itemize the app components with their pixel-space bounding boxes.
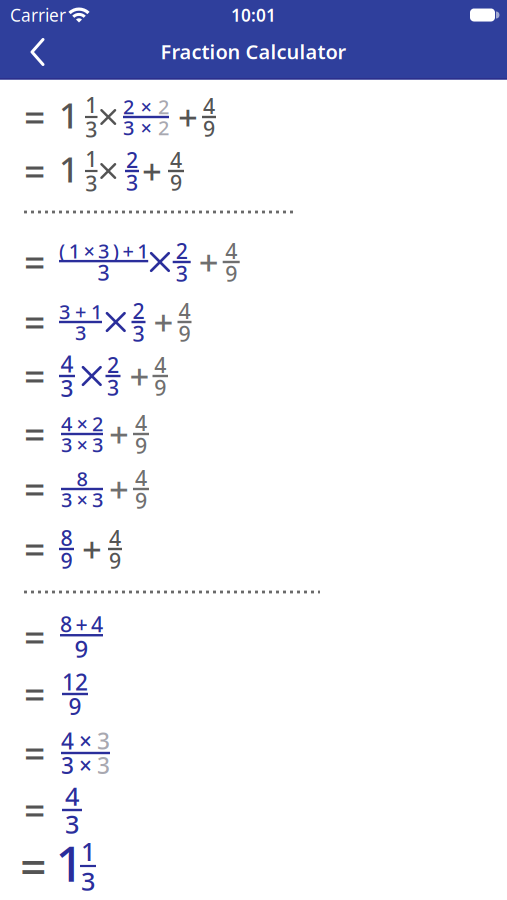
staticText: = bbox=[24, 351, 45, 401]
staticText: 2 bbox=[132, 296, 144, 325]
staticText: × bbox=[79, 726, 92, 756]
staticText: = bbox=[24, 146, 45, 196]
staticText: 3 bbox=[85, 115, 97, 143]
staticText: Carrier bbox=[10, 3, 66, 26]
staticText: 3 bbox=[176, 259, 188, 287]
staticText: 3 bbox=[92, 486, 103, 513]
staticText: 3 bbox=[65, 807, 79, 841]
staticText: 2 bbox=[92, 410, 103, 437]
staticText: 3 bbox=[126, 168, 138, 196]
staticText: 1 bbox=[91, 298, 102, 325]
staticText: 3 bbox=[107, 373, 119, 401]
staticText: 2 bbox=[126, 145, 138, 174]
staticText: 3 bbox=[61, 486, 72, 513]
staticText: = bbox=[24, 237, 45, 287]
staticText: 4 bbox=[135, 408, 147, 437]
staticText: 3 bbox=[60, 373, 73, 403]
staticText: 4 bbox=[61, 410, 72, 437]
staticText: = bbox=[24, 464, 45, 514]
staticText: 10:01 bbox=[231, 3, 276, 26]
staticText: ( bbox=[59, 237, 65, 264]
staticText: × bbox=[79, 750, 92, 780]
staticText: = bbox=[24, 92, 45, 142]
staticText: = bbox=[24, 409, 45, 459]
staticText: ) bbox=[113, 237, 119, 264]
staticText: = bbox=[20, 835, 47, 897]
staticText: 2 bbox=[158, 114, 169, 141]
staticText: 2 bbox=[158, 93, 169, 120]
staticText: = bbox=[24, 728, 45, 778]
staticText: 3 bbox=[98, 237, 109, 264]
staticText: 3 bbox=[97, 726, 110, 756]
staticText: + bbox=[178, 94, 198, 140]
staticText: 9 bbox=[135, 486, 147, 514]
staticText: + bbox=[109, 466, 129, 512]
staticText: 3 bbox=[123, 114, 134, 141]
staticText: 1 bbox=[59, 92, 79, 138]
staticText: Fraction Calculator bbox=[160, 38, 346, 65]
staticText: = bbox=[24, 669, 45, 719]
staticText: 4 bbox=[154, 350, 166, 379]
staticText: + bbox=[122, 237, 133, 264]
staticText: 3 bbox=[97, 750, 110, 780]
staticText: 9 bbox=[60, 546, 72, 574]
staticText: 1 bbox=[85, 145, 97, 173]
staticText: 2 bbox=[107, 350, 119, 379]
staticText: 9 bbox=[68, 691, 81, 721]
staticText: 4 bbox=[91, 610, 103, 638]
staticText: 9 bbox=[203, 114, 215, 142]
staticText: × bbox=[83, 237, 94, 264]
staticText: 9 bbox=[109, 546, 121, 574]
staticText: 3 bbox=[59, 298, 70, 325]
staticText: + bbox=[142, 148, 162, 194]
staticText: 3 bbox=[61, 431, 72, 458]
button[interactable]: Back bbox=[0, 29, 53, 74]
staticText: 2 bbox=[176, 236, 188, 265]
staticText: 3 bbox=[85, 169, 97, 197]
staticText: = bbox=[24, 785, 45, 835]
staticText: 4 bbox=[60, 349, 73, 379]
staticText: 12 bbox=[62, 667, 88, 697]
staticText: 9 bbox=[178, 319, 190, 347]
staticText: × bbox=[76, 431, 87, 458]
staticText: 4 bbox=[135, 463, 147, 492]
staticText: + bbox=[75, 298, 86, 325]
staticText: + bbox=[199, 239, 219, 285]
staticText: + bbox=[129, 353, 149, 399]
staticText: 3 bbox=[61, 750, 74, 780]
staticText: 3 bbox=[75, 319, 86, 346]
staticText: 4 bbox=[109, 523, 121, 552]
staticText: 9 bbox=[154, 373, 166, 401]
staticText: 4 bbox=[225, 236, 237, 265]
staticText: 4 bbox=[178, 296, 190, 325]
staticText: = bbox=[24, 524, 45, 574]
staticText: 1 bbox=[81, 834, 95, 868]
staticText: 1 bbox=[137, 237, 148, 264]
staticText: 1 bbox=[59, 146, 79, 192]
staticText: 3 bbox=[98, 258, 110, 287]
staticText: 9 bbox=[225, 259, 237, 287]
staticText: = bbox=[24, 297, 45, 347]
staticText: 3 bbox=[81, 864, 95, 898]
staticText: 4 bbox=[203, 91, 215, 120]
staticText: 4 bbox=[65, 779, 79, 813]
staticText: 2 bbox=[123, 93, 134, 120]
staticText: + bbox=[109, 411, 129, 457]
staticText: + bbox=[75, 610, 87, 638]
staticText: 1 bbox=[55, 830, 83, 895]
staticText: 8 bbox=[60, 610, 72, 638]
staticText: × bbox=[76, 486, 87, 513]
staticText: 9 bbox=[74, 632, 88, 664]
staticText: × bbox=[140, 114, 151, 141]
staticText: 8 bbox=[76, 465, 87, 492]
staticText: 3 bbox=[92, 431, 103, 458]
staticText: + bbox=[82, 526, 102, 572]
staticText: 1 bbox=[85, 91, 97, 119]
staticText: 9 bbox=[135, 431, 147, 459]
staticText: 8 bbox=[60, 523, 72, 552]
staticText: + bbox=[153, 299, 173, 345]
staticText: 4 bbox=[170, 145, 182, 174]
staticText: = bbox=[24, 612, 45, 662]
staticText: 9 bbox=[170, 168, 182, 196]
staticText: 4 bbox=[61, 726, 74, 756]
